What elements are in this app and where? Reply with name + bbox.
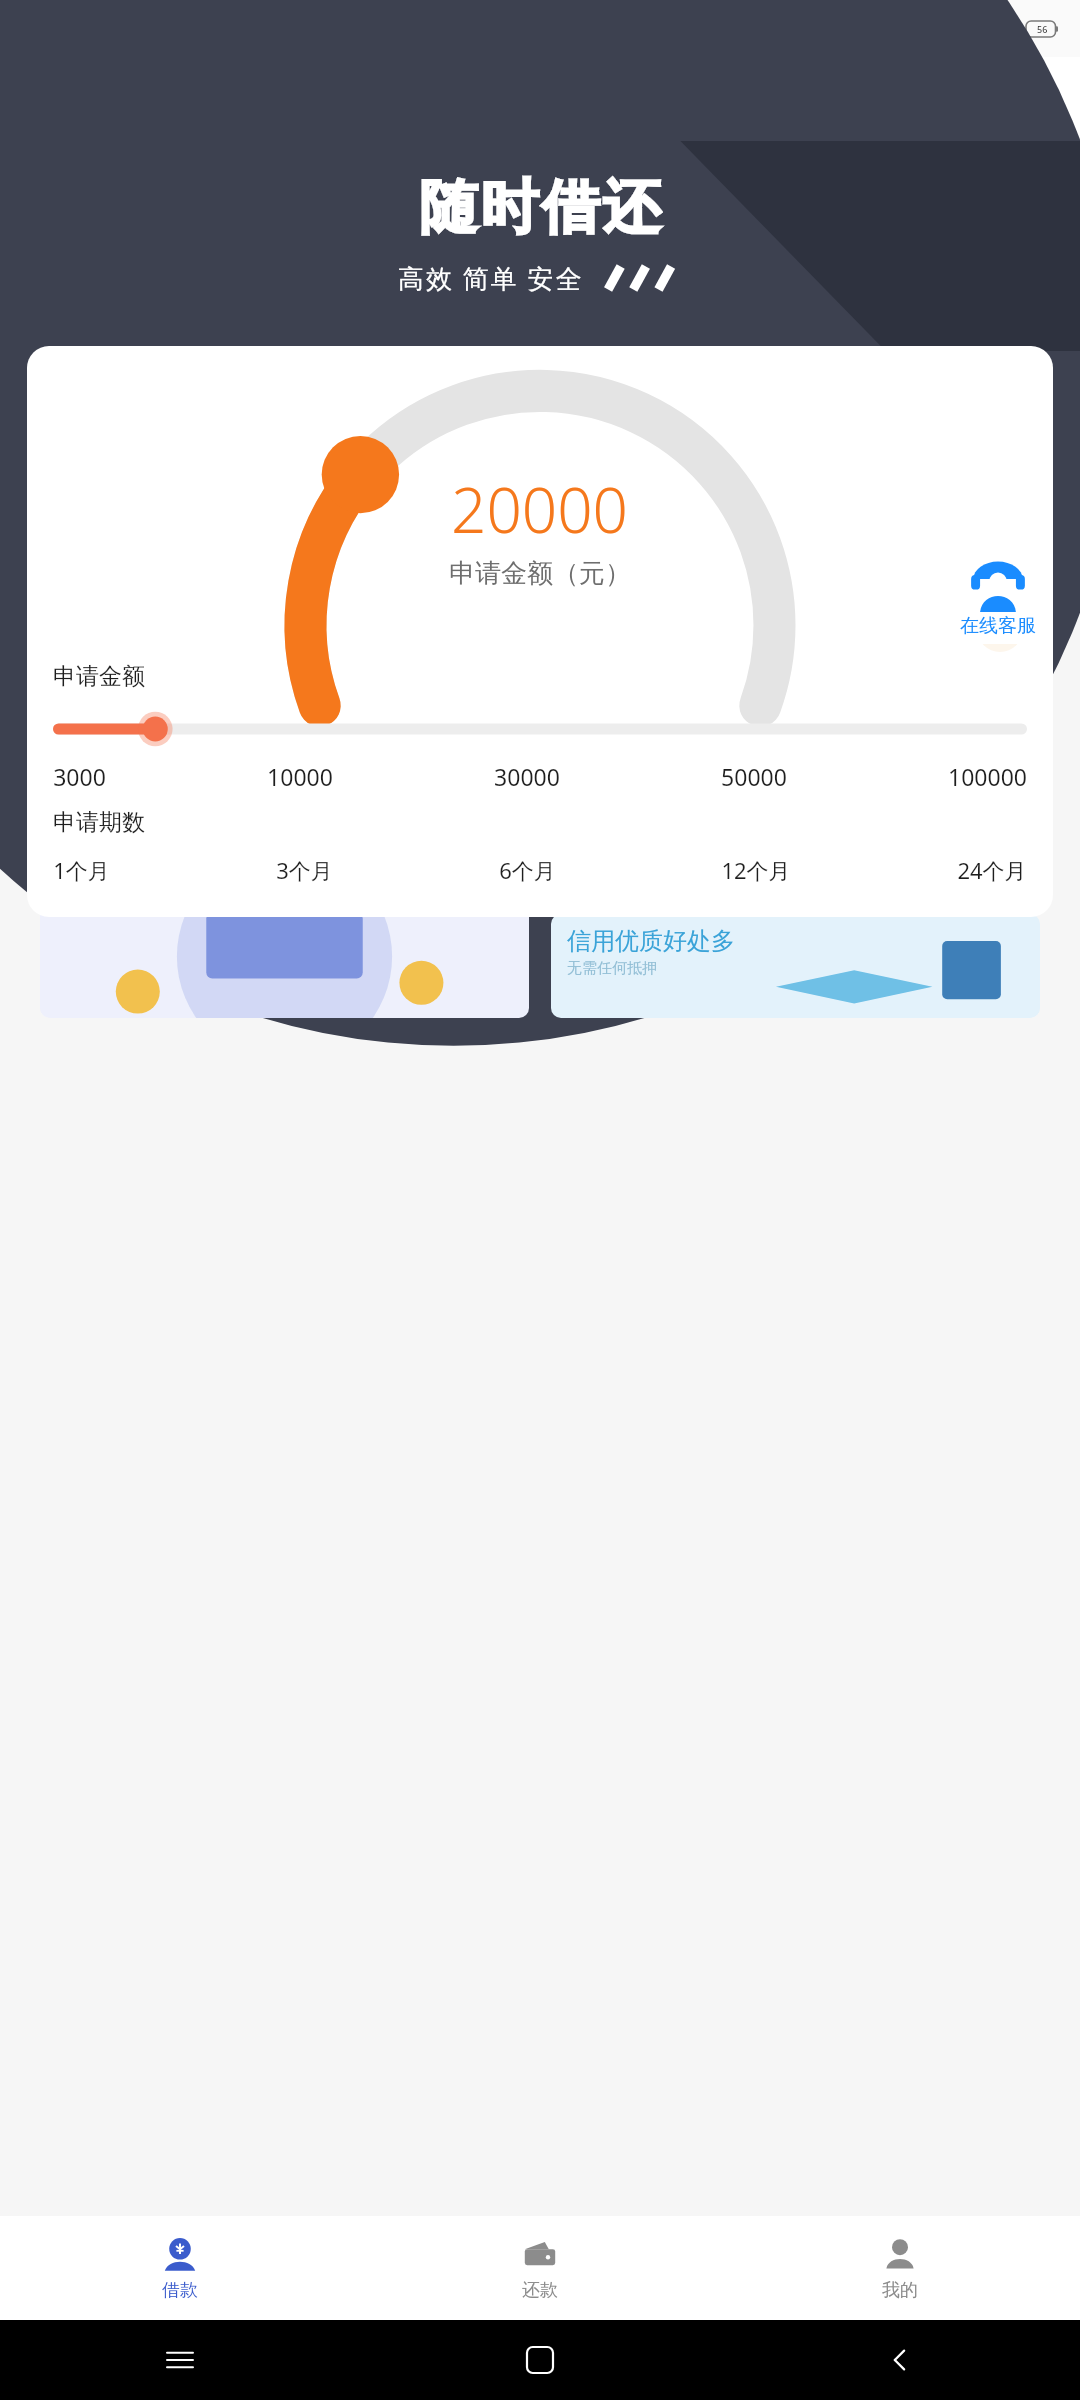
staticText: 还款: [522, 2279, 558, 2302]
staticText: 在线客服: [960, 614, 1036, 638]
staticText: 1个月: [53, 855, 110, 885]
staticText: 6个月: [499, 855, 556, 885]
staticText: 高效 简单 安全: [398, 260, 584, 296]
staticText: 3000: [53, 761, 106, 792]
staticText: 24个月: [957, 855, 1027, 885]
button[interactable]: 我的: [720, 2216, 1080, 2320]
button[interactable]: 在线客服: [951, 556, 1045, 638]
staticText: 30000: [494, 761, 560, 792]
button[interactable]: 还款: [360, 2216, 720, 2320]
button[interactable]: VIP: [977, 606, 1023, 652]
button[interactable]: 随时借款: [551, 798, 1040, 902]
staticText: 12个月: [721, 855, 791, 885]
button[interactable]: Home: [360, 2320, 720, 2400]
button[interactable]: 12个月: [721, 853, 791, 887]
button[interactable]: 6个月: [499, 853, 556, 887]
staticText: 10000: [267, 761, 333, 792]
button[interactable]: 3个月: [276, 853, 333, 887]
staticText: 56: [1037, 23, 1048, 35]
staticText: 100000: [948, 761, 1027, 792]
staticText: 十分钟放款: [58, 851, 143, 872]
staticText: 1分钟认证: [58, 814, 168, 847]
button[interactable]: Back: [720, 2320, 1080, 2400]
button[interactable]: 信用优质好处多: [551, 914, 1040, 1018]
staticText: 50000: [721, 761, 787, 792]
button[interactable]: Amount slider: [53, 713, 1027, 745]
staticText: 申请期数: [53, 808, 145, 837]
button[interactable]: 去还款: [52, 663, 1028, 725]
staticText: 3个月: [276, 855, 333, 885]
staticText: 我的: [882, 2279, 918, 2302]
button[interactable]: 借款: [0, 2216, 360, 2320]
button[interactable]: 1分钟认证: [40, 798, 529, 1018]
button[interactable]: Recents: [0, 2320, 360, 2400]
staticText: 20000: [451, 467, 629, 551]
button[interactable]: 1个月: [53, 853, 110, 887]
staticText: 借款: [162, 2279, 198, 2302]
staticText: 产品亮点: [45, 753, 149, 786]
staticText: 信用优质好处多: [567, 926, 735, 956]
staticText: 申请金额（元）: [449, 557, 631, 590]
button[interactable]: 24个月: [957, 853, 1027, 887]
staticText: 无需任何抵押: [567, 959, 657, 978]
staticText: 随时借还: [418, 171, 662, 244]
staticText: 申请金额: [53, 662, 145, 691]
